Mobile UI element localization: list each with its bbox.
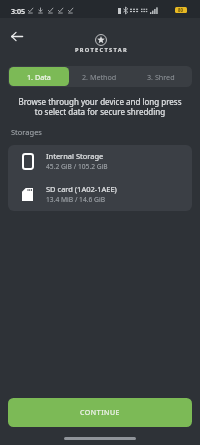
staticText: 45.2 GiB / 105.2 GiB — [46, 162, 108, 171]
button[interactable]: 3. Shred — [130, 67, 191, 86]
staticText: 2. Method — [82, 72, 117, 82]
button[interactable]: 2. Method — [69, 67, 130, 86]
button[interactable]: CONTINUE — [8, 398, 192, 427]
button[interactable]: 1. Data — [9, 67, 69, 86]
button[interactable]: SD card (1A02-1AEE) — [8, 178, 192, 211]
button[interactable]: Back — [5, 25, 28, 48]
staticText: PROTECTSTAR — [75, 46, 128, 54]
staticText: Browse through your device and long pres… — [6, 96, 194, 117]
staticText: 1. Data — [27, 72, 51, 82]
staticText: 80 — [178, 7, 184, 13]
staticText: 13.4 MiB / 14.6 GiB — [46, 195, 106, 204]
staticText: Internal Storage — [46, 151, 104, 161]
staticText: Storages — [11, 127, 42, 137]
staticText: SD card (1A02-1AEE) — [46, 184, 117, 194]
staticText: CONTINUE — [80, 408, 121, 418]
staticText: 3. Shred — [147, 72, 175, 82]
staticText: 3:05 — [11, 6, 26, 16]
button[interactable]: Internal Storage — [8, 145, 192, 178]
